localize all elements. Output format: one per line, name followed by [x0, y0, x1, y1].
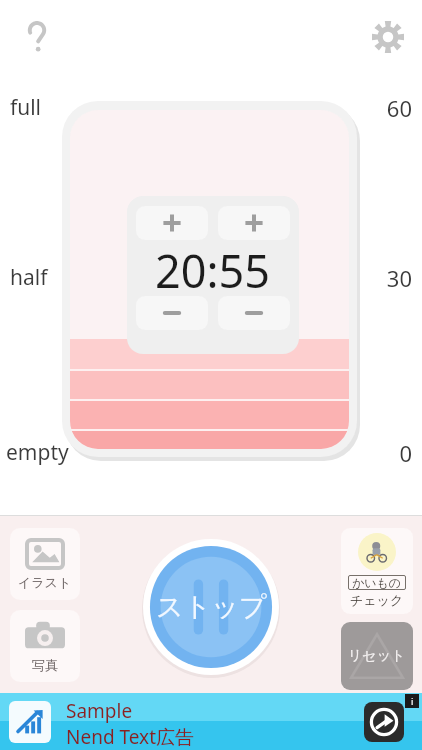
staticText: i — [411, 695, 414, 707]
staticText: half — [10, 263, 48, 292]
button[interactable]: リセット — [341, 622, 413, 690]
button[interactable]: かいもの — [341, 528, 413, 614]
staticText: かいもの — [352, 575, 402, 590]
staticText: 30 — [352, 263, 412, 293]
staticText: ストップ — [156, 590, 267, 624]
button[interactable]: イラスト — [10, 528, 80, 600]
staticText: empty — [6, 438, 69, 467]
staticText: full — [10, 93, 42, 122]
staticText: 20:55 — [155, 240, 271, 296]
staticText: 60 — [352, 93, 412, 123]
staticText: チェック — [350, 592, 404, 608]
staticText: 0 — [352, 438, 412, 468]
button[interactable]: Increase seconds — [218, 206, 290, 240]
button[interactable]: Decrease minutes — [136, 296, 208, 330]
staticText: イラスト — [18, 574, 72, 590]
staticText: Sample — [66, 698, 133, 724]
button[interactable]: ストップ — [142, 538, 280, 676]
staticText: リセット — [348, 647, 406, 665]
staticText: Nend Text広告 — [66, 724, 195, 750]
button[interactable]: Help — [16, 16, 58, 58]
button[interactable]: Increase minutes — [136, 206, 208, 240]
button[interactable]: Settings — [366, 15, 410, 59]
staticText: 写真 — [32, 657, 58, 673]
button[interactable]: Open ad — [364, 702, 404, 742]
button[interactable]: Decrease seconds — [218, 296, 290, 330]
button[interactable]: 写真 — [10, 610, 80, 682]
button[interactable] — [70, 110, 349, 449]
